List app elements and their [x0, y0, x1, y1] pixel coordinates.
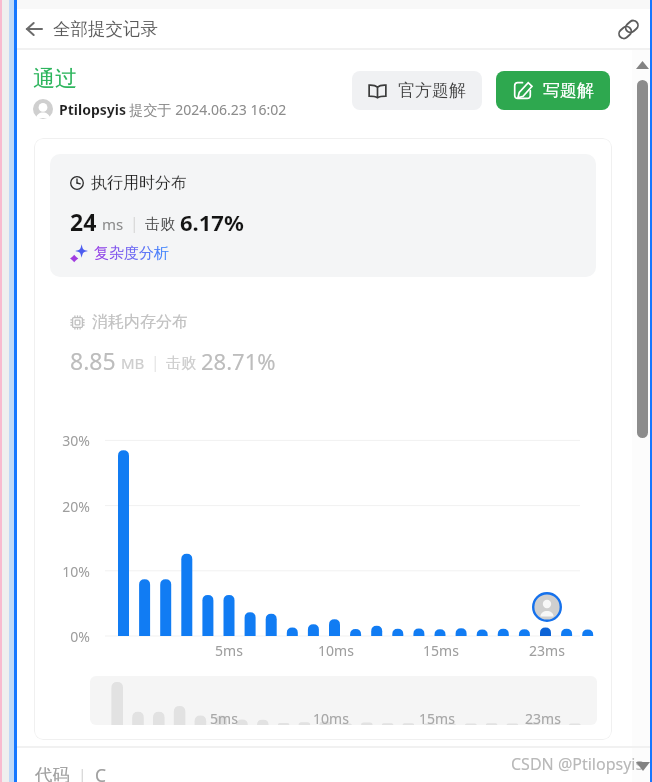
- staticText: 5ms: [204, 641, 254, 660]
- staticText: 消耗内存分布: [92, 312, 188, 332]
- staticText: |: [78, 764, 87, 782]
- staticText: 23ms: [518, 709, 568, 728]
- staticText: 10ms: [306, 709, 356, 728]
- staticText: 23ms: [522, 641, 572, 660]
- staticText: |: [151, 351, 160, 373]
- staticText: 28.71%: [201, 346, 276, 376]
- staticText: MB: [121, 353, 145, 373]
- staticText: Ptilopsyis 提交于 2024.06.23 16:02: [59, 100, 287, 119]
- staticText: 6.17%: [180, 207, 244, 237]
- button[interactable]: Copy link: [613, 14, 643, 44]
- button[interactable]: [90, 676, 597, 725]
- staticText: 通过: [33, 65, 77, 93]
- button[interactable]: 官方题解: [352, 71, 482, 110]
- staticText: |: [130, 212, 139, 234]
- staticText: CSDN @Ptilopsyis: [511, 753, 644, 775]
- button[interactable]: 写题解: [496, 71, 610, 110]
- staticText: 5ms: [199, 709, 249, 728]
- staticText: 10%: [46, 562, 90, 581]
- staticText: 8.85: [70, 345, 116, 376]
- staticText: 全部提交记录: [53, 18, 158, 40]
- staticText: 15ms: [412, 709, 462, 728]
- staticText: 24: [70, 206, 97, 237]
- staticText: C: [95, 763, 107, 782]
- staticText: 官方题解: [398, 80, 466, 101]
- staticText: 15ms: [416, 641, 466, 660]
- staticText: 击败: [145, 215, 175, 234]
- button[interactable]: 复杂度分析: [70, 242, 169, 263]
- staticText: 20%: [46, 497, 90, 516]
- staticText: 复杂度分析: [94, 244, 169, 263]
- staticText: 代码: [35, 764, 70, 782]
- staticText: 击败: [166, 354, 196, 373]
- staticText: 写题解: [543, 80, 594, 101]
- staticText: 30%: [46, 431, 90, 450]
- staticText: ms: [102, 214, 124, 234]
- staticText: 10ms: [311, 641, 361, 660]
- staticText: 0%: [46, 627, 90, 646]
- button[interactable]: Back: [19, 14, 49, 44]
- staticText: 执行用时分布: [91, 173, 187, 193]
